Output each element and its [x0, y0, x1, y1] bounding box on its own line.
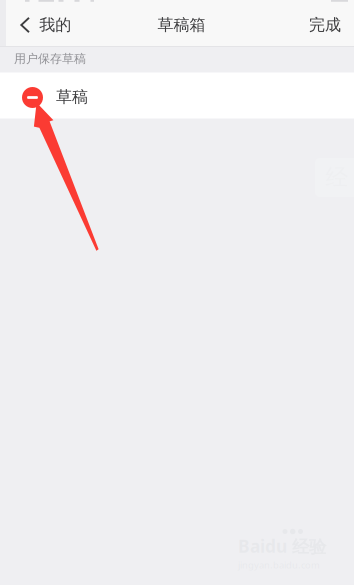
staticText: 用户保存草稿 [14, 51, 86, 66]
button[interactable]: Delete 草稿 [0, 72, 52, 120]
staticText: Baidu 经验 [238, 534, 326, 558]
staticText: 草稿箱 [157, 15, 205, 35]
button[interactable]: 草稿 [0, 72, 354, 118]
button[interactable]: 我的 [0, 0, 83, 46]
button[interactable]: 完成 [293, 0, 354, 46]
staticText: 完成 [309, 15, 341, 35]
staticText: 我的 [39, 15, 71, 35]
staticText: 草稿 [56, 87, 88, 107]
